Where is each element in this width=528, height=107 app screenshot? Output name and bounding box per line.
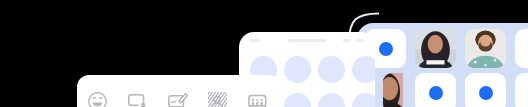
button[interactable]: Participant video <box>465 29 506 68</box>
button[interactable]: Participant <box>365 29 406 68</box>
button[interactable]: Participant <box>465 73 506 107</box>
button[interactable]: Present screen <box>117 75 157 107</box>
button[interactable]: Change layout <box>237 75 277 107</box>
button[interactable] <box>239 32 375 107</box>
button[interactable] <box>357 23 528 107</box>
button[interactable]: Participant video <box>415 29 456 68</box>
button[interactable]: Reactions <box>77 75 117 107</box>
button[interactable] <box>515 73 528 107</box>
button[interactable]: Visual effects <box>197 75 237 107</box>
button[interactable] <box>515 29 528 68</box>
button[interactable]: Participant <box>415 73 456 107</box>
button[interactable]: Whiteboard <box>157 75 197 107</box>
button[interactable]: Participant video <box>383 73 403 107</box>
